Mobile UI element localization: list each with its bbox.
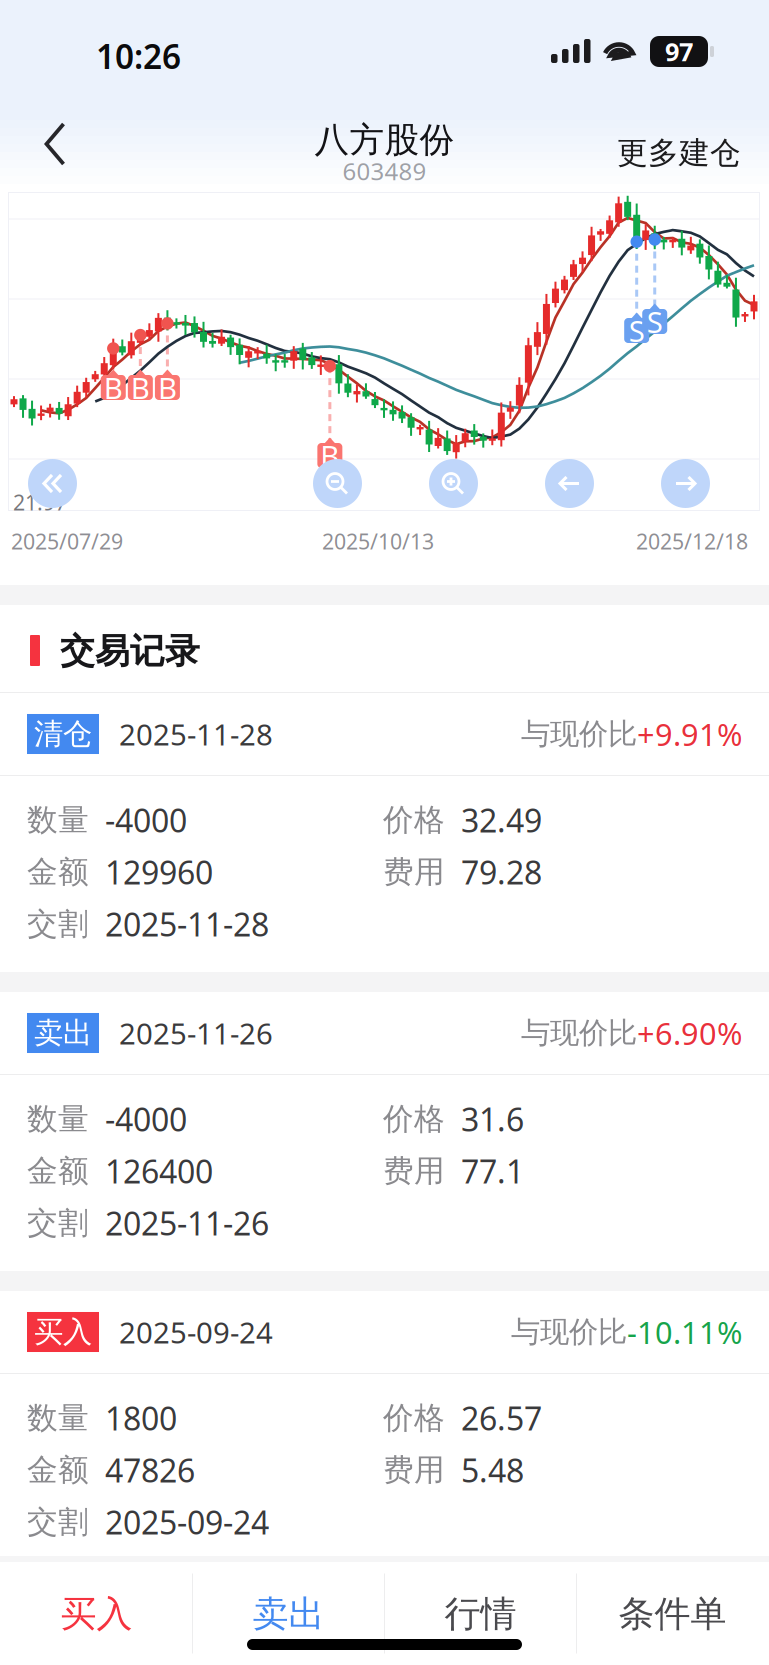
staticText: 条件单 [618,1592,726,1636]
button[interactable]: Pan right [661,459,710,508]
staticText: 买入 [60,1592,132,1636]
staticText: 97 [665,35,693,68]
staticText: 费用 [383,853,445,891]
staticText: S [629,311,645,350]
staticText: 费用 [383,1451,445,1489]
staticText: 2025/07/29 [11,527,123,555]
staticText: 与现价比 [521,1015,637,1051]
staticText: 交割 [27,1204,89,1242]
staticText: 金额 [27,1451,89,1489]
staticText: 金额 [27,853,89,891]
button[interactable]: 更多建仓 [581,123,741,183]
button[interactable]: Zoom in [429,459,478,508]
button[interactable]: Jump to start [28,459,77,508]
staticText: 与现价比 [521,716,637,752]
staticText: 价格 [383,1100,445,1138]
staticText: 费用 [383,1152,445,1190]
staticText: 更多建仓 [617,134,741,172]
staticText: 金额 [27,1152,89,1190]
staticText: 126400 [105,1150,213,1192]
staticText: 价格 [383,801,445,839]
staticText: 2025-11-26 [105,1202,269,1244]
staticText: 清仓 [34,716,92,752]
staticText: 47826 [105,1449,195,1491]
staticText: 2025-11-28 [105,903,269,945]
button[interactable]: 行情 [385,1562,576,1665]
staticText: 26.57 [461,1397,542,1439]
button[interactable]: 卖出 [0,992,769,1074]
staticText: 数量 [27,1100,89,1138]
staticText: 77.1 [461,1150,524,1192]
staticText: 买入 [34,1314,92,1350]
staticText: B [104,368,123,407]
staticText: 2025-11-26 [119,1013,273,1052]
staticText: 603489 [342,155,426,187]
staticText: 与现价比 [511,1314,627,1350]
staticText: 129960 [105,851,213,893]
staticText: 32.49 [461,799,542,841]
staticText: +9.91% [637,714,742,754]
staticText: +6.90% [637,1013,742,1053]
staticText: B [320,436,339,475]
staticText: 1800 [105,1397,177,1439]
staticText: 79.28 [461,851,542,893]
staticText: 10:26 [96,34,181,78]
button[interactable]: Zoom out [313,459,362,508]
button[interactable]: 买入 [1,1562,192,1665]
staticText: 2025-09-24 [105,1501,269,1543]
button[interactable]: 清仓 [0,693,769,775]
staticText: -10.11% [627,1312,742,1352]
staticText: 交易记录 [60,630,200,673]
staticText: S [647,302,663,341]
staticText: 2025/10/13 [322,527,434,555]
staticText: 21.97 [13,488,67,516]
staticText: 5.48 [461,1449,524,1491]
button[interactable]: 条件单 [577,1562,768,1665]
staticText: -4000 [105,799,187,841]
staticText: 数量 [27,801,89,839]
button[interactable]: Back [12,101,98,187]
staticText: 31.6 [461,1098,524,1140]
staticText: 交割 [27,905,89,943]
staticText: 数量 [27,1399,89,1437]
staticText: 2025-11-28 [119,714,273,753]
staticText: 八方股份 [314,119,454,161]
staticText: 2025-09-24 [119,1312,273,1351]
button[interactable]: 卖出 [193,1562,384,1665]
staticText: 卖出 [252,1592,324,1636]
staticText: 卖出 [34,1015,92,1051]
button[interactable]: Pan left [545,459,594,508]
button[interactable]: 买入 [0,1291,769,1373]
staticText: B [131,368,150,407]
staticText: 交割 [27,1503,89,1541]
staticText: B [158,368,177,407]
staticText: 行情 [444,1592,516,1636]
staticText: 2025/12/18 [636,527,748,555]
staticText: 价格 [383,1399,445,1437]
staticText: -4000 [105,1098,187,1140]
